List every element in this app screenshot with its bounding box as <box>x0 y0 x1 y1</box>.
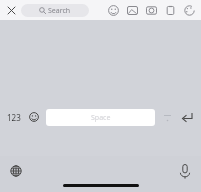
button[interactable]: 123 <box>3 108 25 126</box>
button[interactable]: Emoji keyboard <box>25 108 43 126</box>
staticText: 123 <box>7 112 21 123</box>
button[interactable]: Emoji <box>106 3 120 17</box>
staticText: Space <box>91 113 111 123</box>
button[interactable]: Dictate <box>175 161 195 181</box>
button[interactable]: Apps <box>163 3 177 17</box>
button[interactable]: GIF <box>125 3 139 17</box>
button[interactable]: Return <box>176 108 198 126</box>
button[interactable]: More <box>158 108 176 126</box>
button[interactable]: Search <box>21 4 89 17</box>
staticText: Search <box>48 6 71 16</box>
button[interactable]: Space <box>46 109 155 126</box>
button[interactable]: Camera <box>144 3 158 17</box>
button[interactable]: Close <box>5 4 17 16</box>
button[interactable]: Switch keyboard <box>6 161 26 181</box>
button[interactable]: Stickers <box>182 3 196 17</box>
